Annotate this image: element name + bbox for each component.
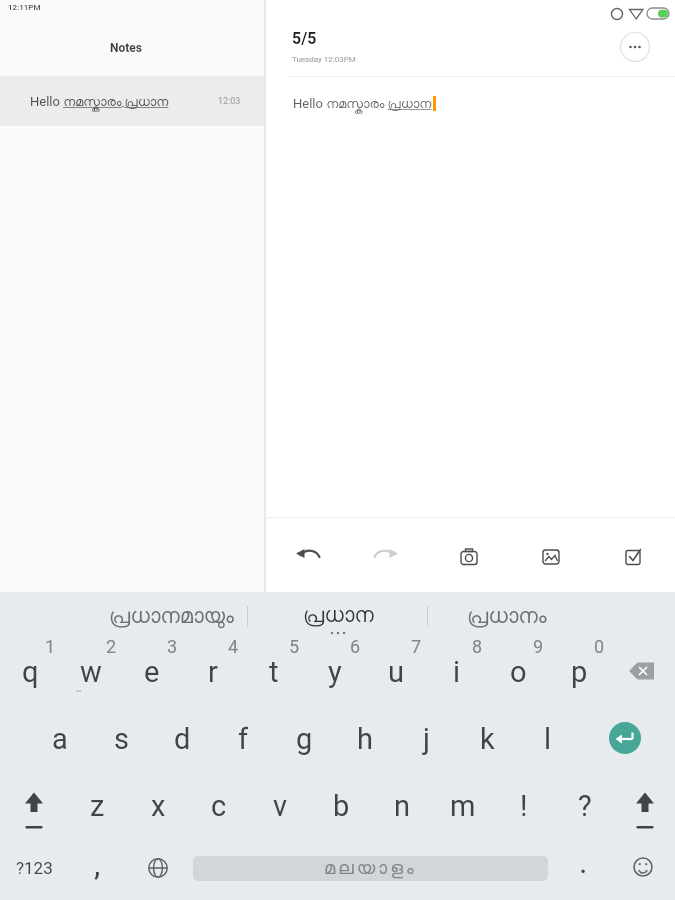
button[interactable]: e: [123, 644, 181, 700]
button[interactable]: [623, 847, 663, 887]
button[interactable]: പ്രധാന: [278, 597, 398, 633]
staticText: ?: [578, 789, 592, 823]
staticText: c: [211, 789, 227, 823]
button[interactable]: y: [306, 644, 364, 700]
button[interactable]: [368, 536, 408, 576]
staticText: w: [80, 655, 102, 689]
button[interactable]: [613, 536, 653, 576]
button[interactable]: x: [129, 778, 187, 834]
staticText: v: [273, 789, 288, 823]
staticText: g: [296, 722, 313, 756]
button[interactable]: പ്രധാനം: [442, 598, 572, 634]
button[interactable]: a: [31, 711, 89, 767]
staticText: 5: [289, 636, 300, 657]
button[interactable]: [14, 788, 56, 830]
staticText: o: [510, 655, 527, 689]
staticText: m: [450, 789, 476, 823]
staticText: x: [151, 789, 166, 823]
staticText: h: [357, 722, 373, 756]
staticText: q: [22, 655, 39, 689]
staticText: 0: [594, 636, 605, 657]
button[interactable]: o: [489, 644, 547, 700]
staticText: t: [269, 655, 279, 689]
button[interactable]: [620, 650, 662, 692]
staticText: b: [333, 789, 350, 823]
button[interactable]: പ്രധാനമായും: [86, 598, 256, 634]
staticText: പ്രധാനമായും: [109, 606, 234, 627]
button[interactable]: f: [214, 711, 272, 767]
staticText: 6: [350, 636, 361, 657]
staticText: പ്രധാനം: [467, 606, 547, 627]
button[interactable]: j: [397, 711, 455, 767]
staticText: 12:11PM: [8, 3, 41, 12]
staticText: 7: [411, 636, 422, 657]
staticText: 8: [472, 636, 483, 657]
staticText: u: [388, 655, 404, 689]
button[interactable]: [138, 848, 178, 888]
button[interactable]: h: [336, 711, 394, 767]
staticText: 9: [533, 636, 544, 657]
button[interactable]: i: [428, 644, 486, 700]
button[interactable]: t: [245, 644, 303, 700]
button[interactable]: v: [251, 778, 309, 834]
button[interactable]: ?123: [6, 848, 62, 888]
staticText: s: [114, 722, 129, 756]
button[interactable]: q: [1, 644, 59, 700]
button[interactable]: .: [563, 838, 603, 886]
staticText: ?123: [16, 858, 53, 878]
staticText: Tuesday 12:03PM: [292, 55, 356, 64]
button[interactable]: p: [550, 644, 608, 700]
button[interactable]: മലയാളം: [193, 856, 548, 881]
staticText: 3: [167, 636, 178, 657]
staticText: k: [480, 722, 495, 756]
button[interactable]: [620, 32, 650, 62]
button[interactable]: [624, 788, 666, 830]
staticText: d: [174, 722, 191, 756]
staticText: ,: [94, 845, 101, 883]
button[interactable]: c: [190, 778, 248, 834]
staticText: n: [394, 789, 411, 823]
button[interactable]: [449, 536, 489, 576]
staticText: j: [423, 722, 430, 756]
staticText: a: [52, 722, 68, 756]
staticText: മലയാളം: [324, 860, 417, 878]
staticText: 12:03: [218, 96, 241, 107]
staticText: 2: [106, 636, 117, 657]
button[interactable]: k: [458, 711, 516, 767]
button[interactable]: l: [519, 711, 577, 767]
button[interactable]: [286, 536, 326, 576]
staticText: 1: [45, 636, 56, 657]
staticText: .: [579, 843, 588, 881]
button[interactable]: ,: [77, 840, 117, 888]
button[interactable]: r: [184, 644, 242, 700]
staticText: Hello നമസ്കാരം പ്രധാന: [30, 94, 169, 109]
staticText: 5/5: [292, 29, 317, 48]
staticText: y: [328, 655, 342, 689]
staticText: f: [238, 722, 249, 756]
staticText: r: [208, 655, 218, 689]
staticText: l: [544, 722, 552, 756]
button[interactable]: n: [373, 778, 431, 834]
button[interactable]: s: [92, 711, 150, 767]
staticText: z: [90, 789, 105, 823]
button[interactable]: [609, 722, 641, 754]
staticText: i: [453, 655, 461, 689]
button[interactable]: w: [62, 644, 120, 700]
button[interactable]: m: [434, 778, 492, 834]
staticText: ~: [76, 686, 82, 695]
staticText: പ്രധാന: [303, 605, 374, 626]
button[interactable]: ?: [556, 778, 614, 834]
button[interactable]: u: [367, 644, 425, 700]
staticText: 4: [228, 636, 239, 657]
button[interactable]: d: [153, 711, 211, 767]
button[interactable]: Hello നമസ്കാരം പ്രധാന: [0, 76, 264, 126]
staticText: p: [571, 655, 588, 689]
button[interactable]: [531, 536, 571, 576]
staticText: e: [144, 655, 160, 689]
button[interactable]: b: [312, 778, 370, 834]
staticText: Notes: [110, 41, 142, 55]
button[interactable]: g: [275, 711, 333, 767]
button[interactable]: z: [68, 778, 126, 834]
staticText: Hello നമസ്കാരം പ്രധാന: [293, 96, 432, 111]
button[interactable]: !: [495, 778, 553, 834]
